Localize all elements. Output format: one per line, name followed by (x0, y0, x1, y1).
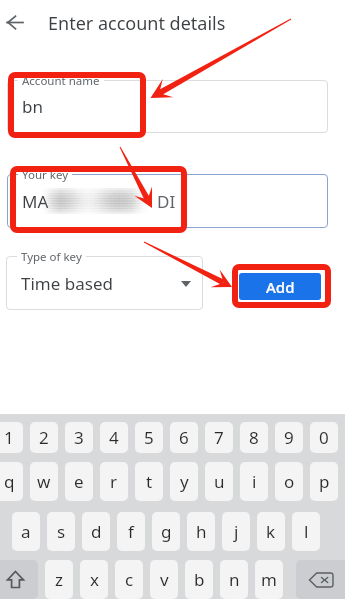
button[interactable]: 4 (100, 422, 128, 453)
button[interactable]: x (80, 560, 108, 599)
button[interactable]: Add (239, 273, 321, 300)
button[interactable]: p (310, 462, 338, 501)
staticText: Add (266, 277, 295, 297)
staticText: 3 (74, 426, 84, 449)
button[interactable]: 0 (310, 422, 338, 453)
staticText: Your key (22, 167, 68, 183)
button[interactable]: 8 (240, 422, 268, 453)
button[interactable]: 3 (65, 422, 93, 453)
button[interactable]: n (220, 560, 248, 599)
staticText: Account name (22, 73, 100, 89)
staticText: n (229, 568, 240, 591)
staticText: 7 (214, 426, 224, 449)
button[interactable]: o (275, 462, 303, 501)
staticText: r (110, 470, 118, 493)
button[interactable]: e (65, 462, 93, 501)
staticText: p (319, 470, 330, 493)
staticText: i (252, 470, 257, 493)
button[interactable]: l (292, 512, 320, 551)
staticText: d (91, 520, 102, 543)
button[interactable]: Back (0, 0, 44, 44)
staticText: DI (157, 190, 176, 213)
staticText: 6 (179, 426, 189, 449)
staticText: v (160, 568, 169, 591)
staticText: t (146, 470, 153, 493)
button[interactable]: 1 (0, 422, 23, 453)
staticText: 1 (4, 426, 14, 449)
button[interactable]: r (100, 462, 128, 501)
staticText: q (4, 470, 15, 493)
staticText: b (194, 568, 205, 591)
button[interactable]: c (115, 560, 143, 599)
button[interactable]: 6 (170, 422, 198, 453)
staticText: s (57, 520, 66, 543)
staticText: z (55, 568, 63, 591)
staticText: f (128, 520, 134, 543)
button[interactable]: w (30, 462, 58, 501)
staticText: Type of key (21, 249, 82, 265)
button[interactable]: Account name (7, 80, 328, 133)
staticText: h (196, 520, 207, 543)
staticText: 9 (284, 426, 294, 449)
button[interactable]: y (170, 462, 198, 501)
button[interactable]: t (135, 462, 163, 501)
button[interactable]: a (12, 512, 40, 551)
staticText: g (161, 520, 172, 543)
staticText: u (214, 470, 225, 493)
button[interactable]: z (45, 560, 73, 599)
staticText: j (234, 520, 239, 543)
button[interactable]: d (82, 512, 110, 551)
button[interactable]: g (152, 512, 180, 551)
button[interactable]: 7 (205, 422, 233, 453)
button[interactable]: f (117, 512, 145, 551)
button[interactable]: Type of key (6, 256, 203, 310)
button[interactable]: s (47, 512, 75, 551)
button[interactable]: k (257, 512, 285, 551)
button[interactable]: Shift (0, 560, 38, 599)
staticText: o (284, 470, 295, 493)
staticText: a (21, 520, 31, 543)
staticText: 8 (249, 426, 259, 449)
staticText: 4 (109, 426, 119, 449)
staticText: m (261, 568, 277, 591)
staticText: e (74, 470, 84, 493)
staticText: 0 (319, 426, 329, 449)
staticText: 2 (39, 426, 49, 449)
button[interactable]: j (222, 512, 250, 551)
button[interactable]: u (205, 462, 233, 501)
button[interactable]: 5 (135, 422, 163, 453)
button[interactable]: 9 (275, 422, 303, 453)
button[interactable]: h (187, 512, 215, 551)
button[interactable]: b (185, 560, 213, 599)
staticText: bn (22, 95, 43, 118)
button[interactable]: v (150, 560, 178, 599)
button[interactable]: Backspace (296, 560, 345, 599)
button[interactable]: i (240, 462, 268, 501)
staticText: Time based (21, 272, 113, 295)
button[interactable]: m (255, 560, 283, 599)
staticText: l (304, 520, 309, 543)
staticText: y (180, 470, 189, 493)
button[interactable]: Your key (7, 174, 328, 228)
staticText: MA (22, 190, 49, 213)
button[interactable]: q (0, 462, 23, 501)
staticText: Enter account details (48, 11, 226, 36)
button[interactable]: 2 (30, 422, 58, 453)
staticText: k (266, 520, 276, 543)
staticText: 5 (144, 426, 154, 449)
staticText: w (37, 470, 51, 493)
staticText: c (125, 568, 134, 591)
staticText: x (90, 568, 99, 591)
